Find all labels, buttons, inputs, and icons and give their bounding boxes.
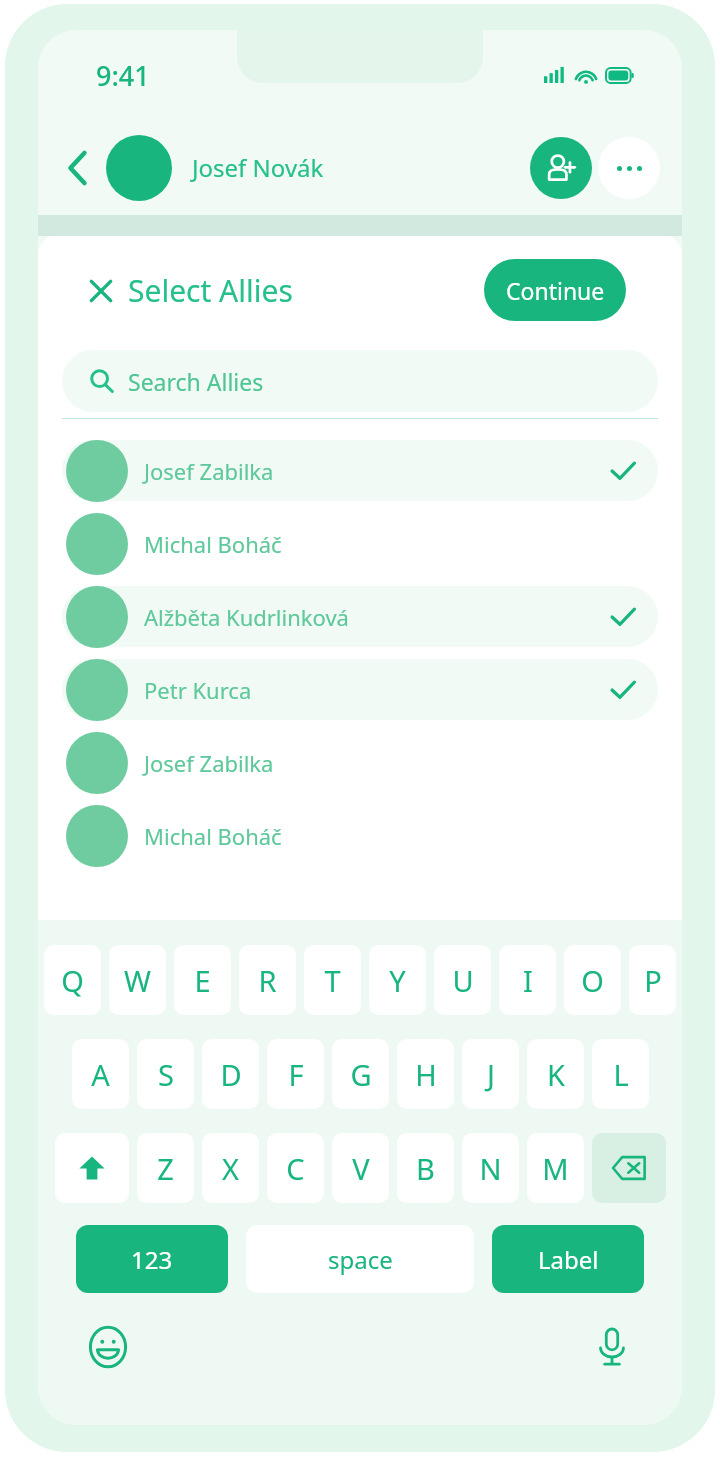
button[interactable]: Shift bbox=[55, 1133, 129, 1203]
button[interactable] bbox=[62, 440, 658, 501]
button[interactable]: K bbox=[527, 1039, 584, 1109]
button[interactable]: B bbox=[397, 1133, 454, 1203]
button[interactable]: V bbox=[332, 1133, 389, 1203]
staticText: V bbox=[352, 1149, 370, 1188]
button[interactable]: Search Allies bbox=[62, 350, 658, 412]
button[interactable]: U bbox=[434, 945, 491, 1015]
button[interactable]: N bbox=[462, 1133, 519, 1203]
staticText: Y bbox=[389, 961, 406, 1000]
staticText: E bbox=[194, 961, 211, 1000]
button[interactable]: Z bbox=[137, 1133, 194, 1203]
button[interactable]: P bbox=[629, 945, 676, 1015]
button[interactable]: Y bbox=[369, 945, 426, 1015]
button[interactable]: F bbox=[267, 1039, 324, 1109]
button[interactable] bbox=[62, 659, 658, 720]
button[interactable]: R bbox=[239, 945, 296, 1015]
staticText: M bbox=[542, 1149, 569, 1188]
staticText: Label bbox=[538, 1243, 599, 1276]
button[interactable]: M bbox=[527, 1133, 584, 1203]
staticText: Josef Zabilka bbox=[144, 748, 636, 778]
staticText: G bbox=[350, 1055, 372, 1094]
button[interactable] bbox=[62, 513, 658, 574]
button[interactable]: Label bbox=[492, 1225, 644, 1293]
staticText: 123 bbox=[131, 1243, 173, 1276]
button[interactable]: Emoji bbox=[80, 1319, 136, 1375]
staticText: B bbox=[416, 1149, 435, 1188]
button[interactable]: Close bbox=[88, 270, 293, 311]
staticText: Q bbox=[61, 961, 84, 1000]
staticText: Petr Kurca bbox=[144, 675, 610, 705]
staticText: space bbox=[328, 1243, 393, 1276]
staticText: K bbox=[547, 1055, 565, 1094]
button[interactable] bbox=[106, 135, 172, 201]
staticText: L bbox=[613, 1055, 629, 1094]
staticText: Michal Boháč bbox=[144, 821, 636, 851]
staticText: I bbox=[523, 961, 533, 1000]
staticText: F bbox=[288, 1055, 304, 1094]
button[interactable]: More options bbox=[598, 137, 660, 199]
staticText: Alžběta Kudrlinková bbox=[144, 602, 610, 632]
staticText: X bbox=[222, 1149, 239, 1188]
staticText: S bbox=[158, 1055, 174, 1094]
button[interactable]: space bbox=[246, 1225, 474, 1293]
button[interactable] bbox=[62, 805, 658, 866]
staticText: Search Allies bbox=[128, 366, 264, 397]
staticText: O bbox=[581, 961, 604, 1000]
staticText: W bbox=[124, 961, 151, 1000]
button[interactable]: Continue bbox=[484, 259, 626, 321]
staticText: Z bbox=[157, 1149, 174, 1188]
staticText: Continue bbox=[506, 275, 605, 306]
button[interactable]: Q bbox=[44, 945, 101, 1015]
button[interactable]: J bbox=[462, 1039, 519, 1109]
staticText: A bbox=[91, 1055, 110, 1094]
button[interactable]: I bbox=[499, 945, 556, 1015]
button[interactable]: W bbox=[109, 945, 166, 1015]
button[interactable]: Back bbox=[56, 146, 100, 190]
button[interactable]: L bbox=[592, 1039, 649, 1109]
button[interactable]: S bbox=[137, 1039, 194, 1109]
button[interactable]: Add person bbox=[530, 137, 592, 199]
button[interactable]: A bbox=[72, 1039, 129, 1109]
button[interactable]: Backspace bbox=[592, 1133, 666, 1203]
staticText: P bbox=[644, 961, 662, 1000]
button[interactable]: C bbox=[267, 1133, 324, 1203]
staticText: J bbox=[487, 1055, 495, 1094]
other: Close bbox=[88, 278, 114, 304]
staticText: Select Allies bbox=[128, 270, 293, 311]
staticText: D bbox=[220, 1055, 242, 1094]
staticText: 9:41 bbox=[96, 57, 150, 94]
button[interactable]: Voice input bbox=[584, 1319, 640, 1375]
staticText: C bbox=[286, 1149, 305, 1188]
staticText: N bbox=[479, 1149, 502, 1188]
staticText: Michal Boháč bbox=[144, 529, 636, 559]
staticText: Josef Zabilka bbox=[144, 456, 610, 486]
button[interactable]: 123 bbox=[76, 1225, 228, 1293]
button[interactable]: G bbox=[332, 1039, 389, 1109]
staticText: Josef Novák bbox=[192, 151, 530, 184]
staticText: H bbox=[415, 1055, 437, 1094]
button[interactable]: T bbox=[304, 945, 361, 1015]
button[interactable] bbox=[62, 586, 658, 647]
button[interactable]: E bbox=[174, 945, 231, 1015]
button[interactable] bbox=[62, 732, 658, 793]
button[interactable]: D bbox=[202, 1039, 259, 1109]
staticText: T bbox=[324, 961, 341, 1000]
staticText: U bbox=[452, 961, 474, 1000]
button[interactable]: O bbox=[564, 945, 621, 1015]
staticText: R bbox=[258, 961, 277, 1000]
button[interactable]: H bbox=[397, 1039, 454, 1109]
button[interactable]: X bbox=[202, 1133, 259, 1203]
